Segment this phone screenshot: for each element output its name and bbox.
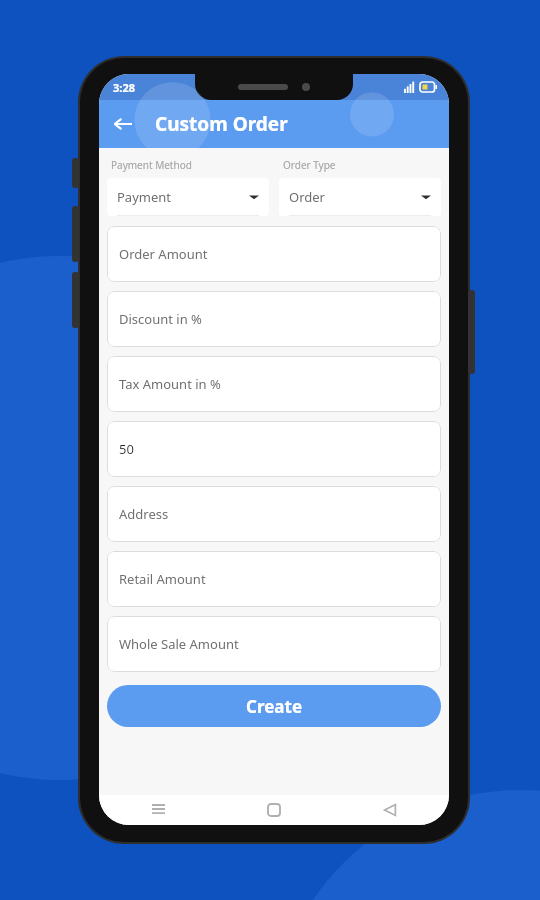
button[interactable]: Back — [103, 104, 143, 144]
button[interactable]: 50 — [107, 421, 441, 477]
button[interactable]: Discount in % — [107, 291, 441, 347]
staticText: 50 — [119, 440, 134, 458]
staticText: Retail Amount — [119, 570, 206, 588]
staticText: Address — [119, 505, 169, 523]
staticText: Tax Amount in % — [119, 375, 221, 393]
button[interactable]: Back — [377, 797, 403, 823]
button[interactable]: Payment — [107, 178, 269, 216]
staticText: Payment — [117, 188, 172, 206]
button[interactable]: Address — [107, 486, 441, 542]
button[interactable]: Create — [107, 685, 441, 727]
button[interactable]: Tax Amount in % — [107, 356, 441, 412]
staticText: Custom Order — [155, 111, 288, 137]
staticText: Whole Sale Amount — [119, 635, 239, 653]
button[interactable]: Order — [279, 178, 441, 216]
staticText: Discount in % — [119, 310, 202, 328]
button[interactable]: Order Amount — [107, 226, 441, 282]
button[interactable]: Home — [261, 797, 287, 823]
staticText: Order — [289, 188, 325, 206]
staticText: Payment Method — [111, 158, 192, 172]
staticText: Order Type — [283, 158, 336, 172]
staticText: Create — [246, 695, 303, 718]
button[interactable]: Whole Sale Amount — [107, 616, 441, 672]
staticText: 3:28 — [113, 80, 135, 95]
staticText: Order Amount — [119, 245, 208, 263]
button[interactable]: Recents — [145, 797, 171, 823]
button[interactable]: Retail Amount — [107, 551, 441, 607]
